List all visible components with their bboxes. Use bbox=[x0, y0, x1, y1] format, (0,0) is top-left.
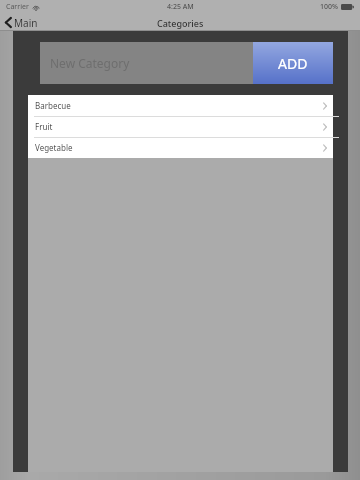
button[interactable]: Main bbox=[0, 14, 46, 31]
staticText: Barbecue bbox=[35, 100, 71, 111]
staticText: ADD bbox=[278, 54, 308, 73]
button[interactable]: Fruit bbox=[28, 116, 333, 137]
button[interactable]: ADD bbox=[253, 42, 333, 84]
button[interactable]: Barbecue bbox=[28, 95, 333, 116]
staticText: Categories bbox=[157, 17, 204, 29]
staticText: Main bbox=[14, 16, 38, 30]
staticText: 100% bbox=[320, 2, 338, 12]
staticText: Vegetable bbox=[35, 142, 73, 153]
staticText: New Category bbox=[50, 55, 130, 71]
button[interactable]: Vegetable bbox=[28, 137, 333, 158]
staticText: 4:25 AM bbox=[167, 2, 194, 12]
staticText: Carrier bbox=[6, 2, 29, 12]
staticText: Fruit bbox=[35, 121, 53, 132]
